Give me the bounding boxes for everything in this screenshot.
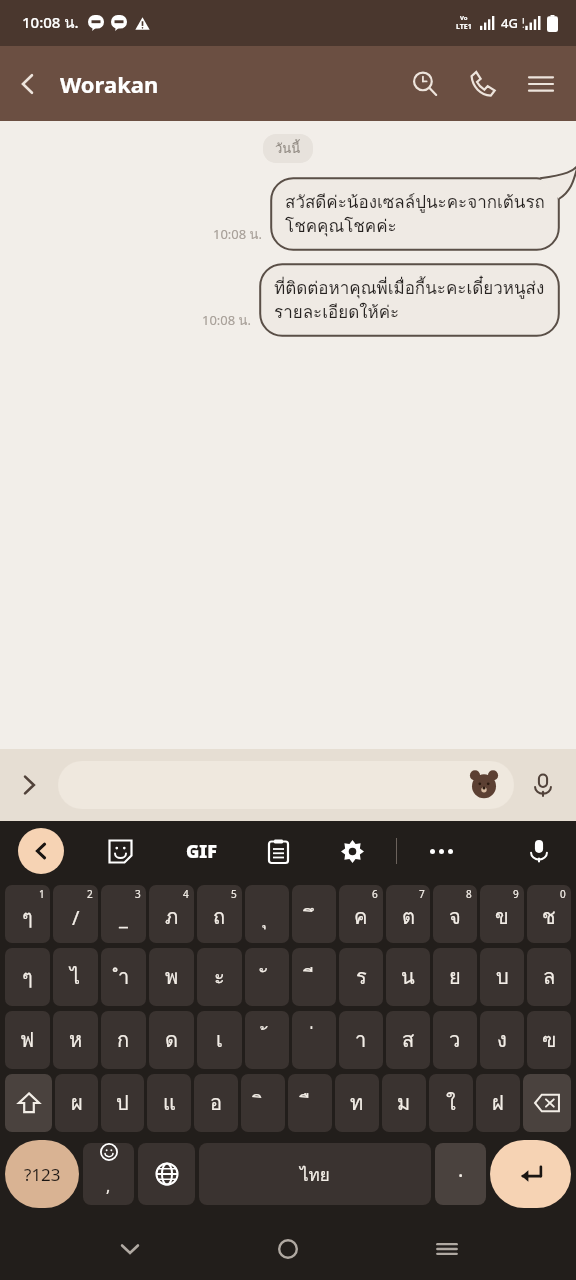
button[interactable]: More options bbox=[0, 756, 58, 814]
button[interactable]: พ bbox=[149, 948, 194, 1006]
button[interactable]: ฟ bbox=[5, 1011, 50, 1069]
button[interactable]: 6 bbox=[339, 885, 383, 943]
staticText: ไทย bbox=[300, 1161, 330, 1188]
staticText: ใ bbox=[446, 1087, 456, 1119]
button[interactable]: ด bbox=[149, 1011, 194, 1069]
button[interactable]: Back bbox=[0, 56, 56, 112]
button[interactable]: . bbox=[435, 1143, 486, 1205]
button[interactable]: ใ bbox=[429, 1074, 473, 1132]
button[interactable]: ั bbox=[245, 948, 289, 1006]
staticText: ง bbox=[497, 1024, 507, 1056]
button[interactable]: ้ bbox=[245, 1011, 289, 1069]
button[interactable]: ผ bbox=[55, 1074, 98, 1132]
staticText: 8 bbox=[466, 887, 472, 901]
button[interactable]: ฃ bbox=[527, 1011, 571, 1069]
button[interactable]: เ bbox=[197, 1011, 242, 1069]
button[interactable]: ื bbox=[288, 1074, 332, 1132]
button[interactable]: Home bbox=[259, 1220, 317, 1278]
button[interactable]: วันนี้ bbox=[263, 134, 313, 163]
staticText: พ bbox=[165, 961, 179, 993]
button[interactable]: Change language bbox=[138, 1143, 195, 1205]
staticText: า bbox=[355, 1024, 367, 1056]
staticText: ข bbox=[495, 901, 509, 933]
button[interactable]: ส bbox=[386, 1011, 430, 1069]
button[interactable]: Shift bbox=[5, 1074, 52, 1132]
button[interactable]: ร bbox=[339, 948, 383, 1006]
staticText: แ bbox=[163, 1087, 176, 1119]
button[interactable]: Hide keyboard bbox=[101, 1220, 159, 1278]
button[interactable]: สวัสดีค่ะน้องเซลล์ปูนะคะจากเต้นรถ โชคคุณ… bbox=[270, 177, 560, 251]
button[interactable]: แ bbox=[147, 1074, 191, 1132]
button[interactable]: Voice input bbox=[516, 828, 562, 874]
button[interactable]: ก bbox=[101, 1011, 146, 1069]
button[interactable]: 0 bbox=[527, 885, 571, 943]
button[interactable]: More bbox=[419, 829, 463, 873]
staticText: ถ bbox=[213, 901, 226, 933]
staticText: / bbox=[72, 904, 80, 931]
button[interactable]: ท bbox=[335, 1074, 379, 1132]
button[interactable]: อ bbox=[194, 1074, 238, 1132]
button[interactable]: Backspace bbox=[523, 1074, 571, 1132]
button[interactable]: ม bbox=[382, 1074, 426, 1132]
button[interactable]: Menu bbox=[512, 55, 570, 113]
button[interactable]: ป bbox=[101, 1074, 144, 1132]
button[interactable]: น bbox=[386, 948, 430, 1006]
button[interactable]: ่ bbox=[292, 1011, 336, 1069]
button[interactable]: ไทย bbox=[199, 1143, 431, 1205]
button[interactable]: 5 bbox=[197, 885, 242, 943]
button[interactable]: ๆ bbox=[5, 948, 50, 1006]
staticText: เ bbox=[216, 1024, 223, 1056]
button[interactable]: Voice message bbox=[514, 756, 572, 814]
button[interactable]: 4 bbox=[149, 885, 194, 943]
staticText: ด bbox=[165, 1024, 178, 1056]
button[interactable]: Stickers bbox=[98, 829, 142, 873]
button[interactable]: ล bbox=[527, 948, 571, 1006]
button[interactable]: 3 bbox=[101, 885, 146, 943]
staticText: GIF bbox=[186, 839, 217, 864]
staticText: ต bbox=[402, 901, 415, 933]
button[interactable]: ิ bbox=[241, 1074, 285, 1132]
button[interactable]: 1 bbox=[5, 885, 50, 943]
staticText: ม bbox=[397, 1087, 411, 1119]
button[interactable]: 7 bbox=[386, 885, 430, 943]
button[interactable]: 8 bbox=[433, 885, 477, 943]
button[interactable]: บ bbox=[480, 948, 524, 1006]
staticText: ป bbox=[116, 1087, 129, 1119]
button[interactable]: 9 bbox=[480, 885, 524, 943]
button[interactable]: Emoji bbox=[83, 1143, 134, 1205]
button[interactable]: ึ bbox=[292, 885, 336, 943]
button[interactable]: Settings bbox=[330, 829, 374, 873]
button[interactable]: ไ bbox=[53, 948, 98, 1006]
button[interactable]: Stickers bbox=[468, 769, 500, 801]
staticText: ะ bbox=[214, 961, 225, 993]
button[interactable]: Search bbox=[396, 55, 454, 113]
button[interactable]: ย bbox=[433, 948, 477, 1006]
button[interactable]: Recent apps bbox=[418, 1220, 476, 1278]
staticText: ฃ bbox=[542, 1024, 557, 1056]
button[interactable]: ห bbox=[53, 1011, 98, 1069]
staticText: ร bbox=[356, 961, 367, 993]
button[interactable]: Message input bbox=[58, 761, 514, 809]
button[interactable]: Clipboard bbox=[256, 829, 300, 873]
button[interactable]: 2 bbox=[53, 885, 98, 943]
button[interactable]: Call bbox=[454, 55, 512, 113]
button[interactable]: ที่ติดต่อหาคุณพี่เมื่อกี้นะคะเดี๋ยวหนูส่… bbox=[259, 263, 560, 337]
button[interactable]: Enter bbox=[490, 1140, 571, 1208]
button[interactable]: Back bbox=[18, 828, 64, 874]
button[interactable]: ว bbox=[433, 1011, 477, 1069]
button[interactable]: ำ bbox=[101, 948, 146, 1006]
staticText: 4G bbox=[501, 14, 518, 32]
button[interactable]: ะ bbox=[197, 948, 242, 1006]
staticText: ห bbox=[69, 1024, 83, 1056]
button[interactable]: Worakan bbox=[56, 69, 159, 99]
staticText: ฟ bbox=[20, 1024, 35, 1056]
button[interactable]: ฝ bbox=[476, 1074, 520, 1132]
button[interactable]: า bbox=[339, 1011, 383, 1069]
button[interactable]: ี bbox=[292, 948, 336, 1006]
button[interactable]: ุ bbox=[245, 885, 289, 943]
staticText: จ bbox=[449, 901, 461, 933]
staticText: ไ bbox=[70, 961, 81, 993]
button[interactable]: ง bbox=[480, 1011, 524, 1069]
button[interactable]: GIF bbox=[176, 826, 226, 876]
button[interactable]: ?123 bbox=[5, 1140, 79, 1208]
